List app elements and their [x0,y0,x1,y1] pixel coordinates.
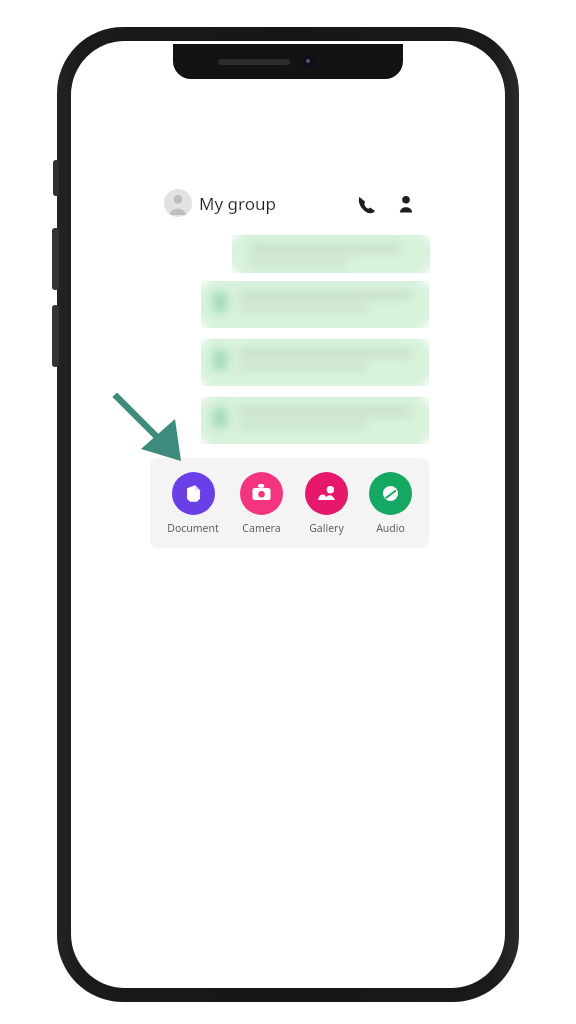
button[interactable]: Camera [236,468,287,539]
staticText: My group [199,192,276,215]
staticText: Document [167,521,219,535]
button[interactable]: Audio [365,468,416,539]
button[interactable]: My group [164,189,284,217]
staticText: Audio [376,521,405,535]
button[interactable]: Document [163,468,223,539]
button[interactable]: Call [349,187,383,221]
staticText: Gallery [309,521,344,535]
button[interactable]: Contact info [389,187,423,221]
staticText: Camera [242,521,281,535]
button[interactable]: Gallery [301,468,352,539]
